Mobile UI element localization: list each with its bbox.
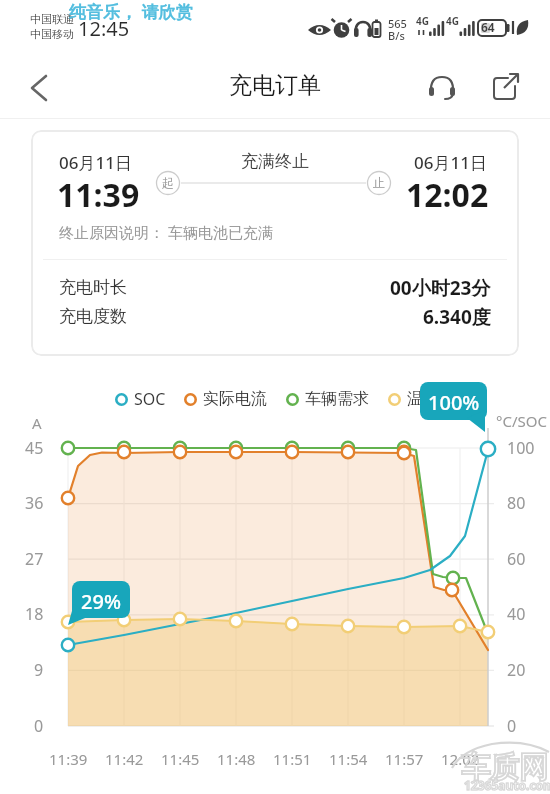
staticText: 车辆需求 <box>305 389 369 409</box>
staticText: 11:42 <box>105 749 144 769</box>
staticText: 充电时长 <box>59 277 127 298</box>
staticText: 4G <box>416 14 429 28</box>
staticText: 车质网 <box>461 749 548 786</box>
staticText: 起 <box>162 175 174 190</box>
staticText: 100% <box>428 389 480 416</box>
staticText: 6.340度 <box>423 304 491 330</box>
staticText: 0 <box>34 715 44 737</box>
staticText: 40 <box>507 603 526 625</box>
staticText: 9 <box>34 659 44 681</box>
staticText: 06月11日 <box>59 151 132 174</box>
button[interactable]: 温度 <box>388 388 439 410</box>
staticText: 中国联通 <box>30 12 74 26</box>
staticText: 565 <box>388 16 407 31</box>
staticText: 11:39 <box>57 173 140 217</box>
staticText: 18 <box>25 603 44 625</box>
staticText: 12365auto.com <box>464 777 550 793</box>
staticText: 11:57 <box>385 749 424 769</box>
staticText: 止 <box>373 175 385 190</box>
button[interactable] <box>22 72 62 106</box>
staticText: 中国移动 <box>30 27 74 41</box>
staticText: 11:48 <box>217 749 256 769</box>
button[interactable]: 实际电流 <box>184 388 267 410</box>
staticText: 36 <box>25 492 44 514</box>
staticText: 充满终止 <box>241 151 309 172</box>
staticText: 45 <box>25 437 44 459</box>
staticText: 100 <box>507 437 535 459</box>
staticText: 60 <box>507 548 526 570</box>
staticText: 4G <box>446 14 459 28</box>
staticText: 20 <box>507 659 526 681</box>
staticText: 充电度数 <box>59 306 127 327</box>
staticText: 12:02 <box>406 173 489 217</box>
staticText: 06月11日 <box>414 151 487 174</box>
staticText: 11:54 <box>329 749 368 769</box>
staticText: 00小时23分 <box>390 275 491 301</box>
staticText: 11:45 <box>161 749 200 769</box>
staticText: 29% <box>81 588 121 615</box>
staticText: 27 <box>25 548 44 570</box>
button[interactable] <box>424 70 460 106</box>
button[interactable] <box>488 70 524 106</box>
staticText: 温度 <box>407 389 439 409</box>
staticText: 12:45 <box>78 15 130 42</box>
staticText: °C/SOC <box>496 411 547 431</box>
staticText: 0 <box>507 715 517 737</box>
staticText: 充电订单 <box>229 71 321 100</box>
button[interactable]: 车辆需求 <box>286 388 369 410</box>
staticText: 11:39 <box>49 749 88 769</box>
staticText: 80 <box>507 492 526 514</box>
button[interactable] <box>31 130 519 356</box>
staticText: 64 <box>481 19 495 35</box>
button[interactable]: SOC <box>115 388 166 410</box>
staticText: 终止原因说明： 车辆电池已充满 <box>59 222 273 242</box>
staticText: 12:02 <box>441 749 480 769</box>
staticText: A <box>32 413 42 433</box>
staticText: 实际电流 <box>203 389 267 409</box>
staticText: B/s <box>388 28 405 43</box>
staticText: 纯音乐， 请欣赏 <box>69 0 193 23</box>
staticText: SOC <box>134 388 166 410</box>
staticText: 11:51 <box>273 749 312 769</box>
